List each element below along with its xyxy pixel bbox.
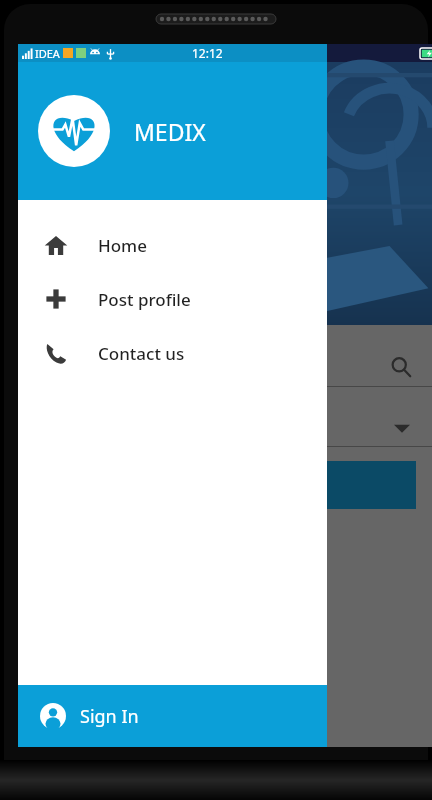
staticText: MEDIX — [134, 116, 206, 147]
staticText: Home — [98, 234, 147, 257]
staticText: 12:12 — [192, 45, 223, 61]
button[interactable]: Post profile — [18, 272, 327, 326]
staticText: Sign In — [80, 704, 139, 729]
button[interactable] — [34, 347, 432, 387]
staticText: Post profile — [98, 288, 191, 311]
staticText: IDEA — [35, 46, 60, 61]
button[interactable]: Home — [18, 218, 327, 272]
button[interactable]: Sign In — [18, 685, 327, 747]
staticText: Contact us — [98, 342, 185, 365]
button[interactable]: Contact us — [18, 326, 327, 380]
button[interactable] — [34, 461, 416, 509]
button[interactable] — [34, 409, 432, 447]
